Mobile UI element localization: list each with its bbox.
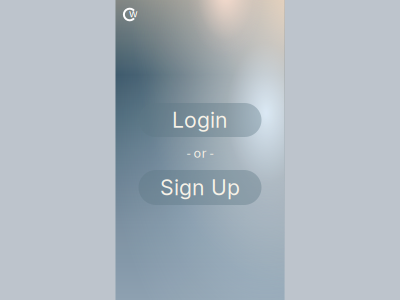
- button[interactable]: Login: [138, 103, 261, 137]
- staticText: w: [129, 5, 138, 22]
- button[interactable]: Clockwise: [120, 5, 140, 25]
- staticText: Login: [172, 107, 228, 133]
- staticText: Sign Up: [160, 175, 240, 200]
- button[interactable]: Sign Up: [138, 170, 261, 205]
- staticText: - or -: [186, 143, 213, 163]
